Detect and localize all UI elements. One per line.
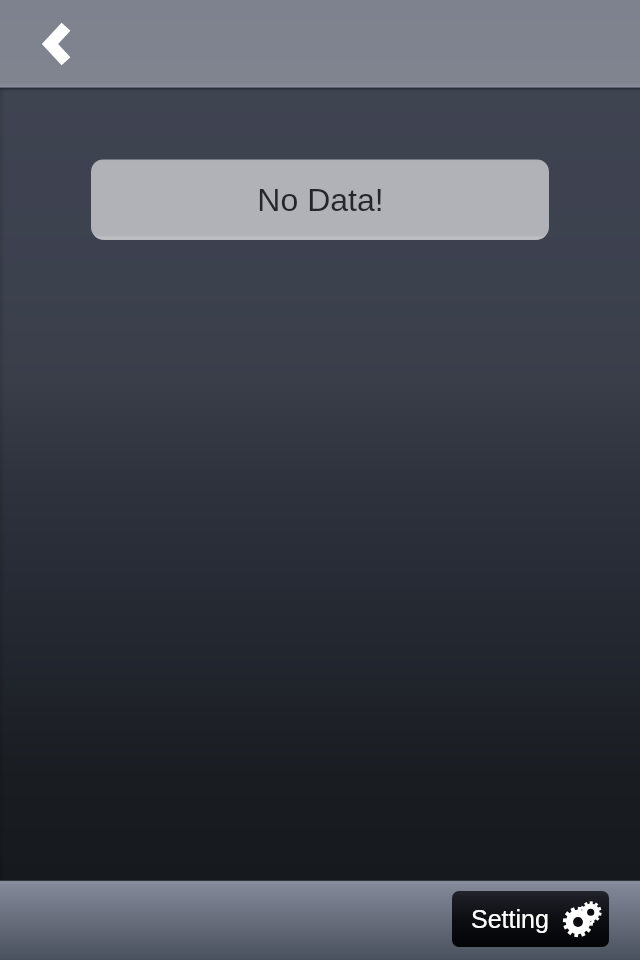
staticText: Setting [471, 905, 549, 933]
button[interactable]: Back [32, 18, 84, 70]
staticText: No Data! [257, 182, 384, 218]
button[interactable]: No Data! [91, 159, 549, 240]
button[interactable]: Setting [452, 891, 609, 947]
